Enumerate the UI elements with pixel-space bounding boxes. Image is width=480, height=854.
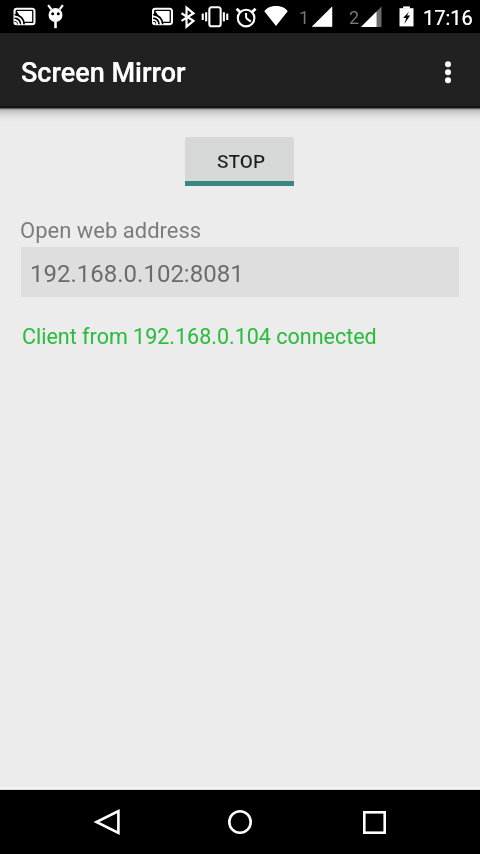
button[interactable]: Home	[212, 794, 268, 850]
button[interactable]: Recent apps	[346, 794, 402, 850]
button[interactable]: 192.168.0.102:8081	[21, 247, 459, 297]
staticText: Open web address	[20, 218, 202, 244]
button[interactable]: Back	[78, 794, 134, 850]
button[interactable]: STOP	[185, 137, 294, 186]
staticText: 1	[299, 7, 310, 28]
staticText: STOP	[217, 150, 266, 172]
staticText: 17:16	[423, 6, 473, 29]
staticText: Client from 192.168.0.104 connected	[22, 324, 377, 349]
staticText: 2	[349, 7, 360, 28]
staticText: Screen Mirror	[21, 57, 186, 89]
button[interactable]: More options	[424, 46, 472, 94]
staticText: 192.168.0.102:8081	[30, 260, 244, 288]
